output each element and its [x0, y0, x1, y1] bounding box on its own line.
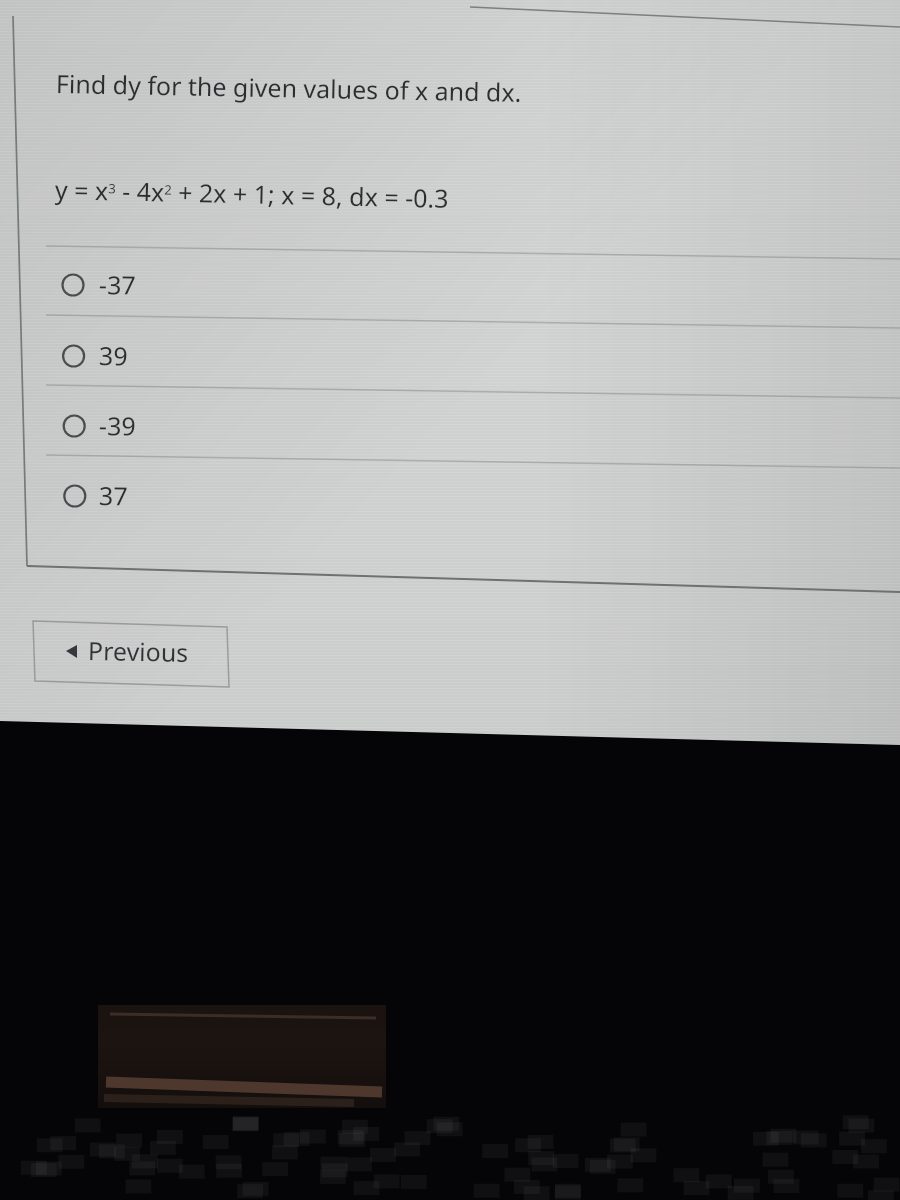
button[interactable]: Quiz question: Find dy for the given val…: [0, 0, 900, 1200]
